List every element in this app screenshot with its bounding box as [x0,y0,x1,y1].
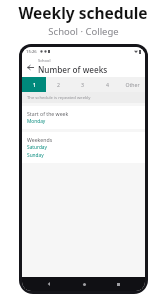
staticText: Saturday [27,144,47,151]
staticText: School [38,58,51,63]
staticText: 1 [33,81,36,88]
button[interactable]: 4 [95,77,120,92]
staticText: 15:26 [26,49,37,55]
button[interactable]: Weekends [22,132,145,163]
staticText: Sunday [27,152,44,159]
button[interactable]: Home [77,277,91,291]
staticText: 3 [81,81,84,88]
button[interactable]: Other [120,77,145,92]
staticText: The schedule is repeated weekly [27,95,91,101]
button[interactable]: 3 [70,77,95,92]
staticText: Other [125,81,140,88]
button[interactable]: Start of the week [22,106,145,129]
button[interactable]: Recent apps [111,277,125,291]
staticText: Start of the week [27,110,69,117]
staticText: Number of weeks [38,64,108,75]
staticText: 4 [106,81,109,88]
staticText: Monday [27,118,46,125]
button[interactable]: 1 [22,77,46,92]
staticText: Weekends [27,136,53,143]
button[interactable]: 2 [46,77,70,92]
staticText: 2 [57,81,60,88]
staticText: Weekly schedule [18,2,148,23]
button[interactable]: Back [42,277,56,291]
button[interactable]: Back [22,59,38,75]
staticText: School · College [48,25,119,38]
